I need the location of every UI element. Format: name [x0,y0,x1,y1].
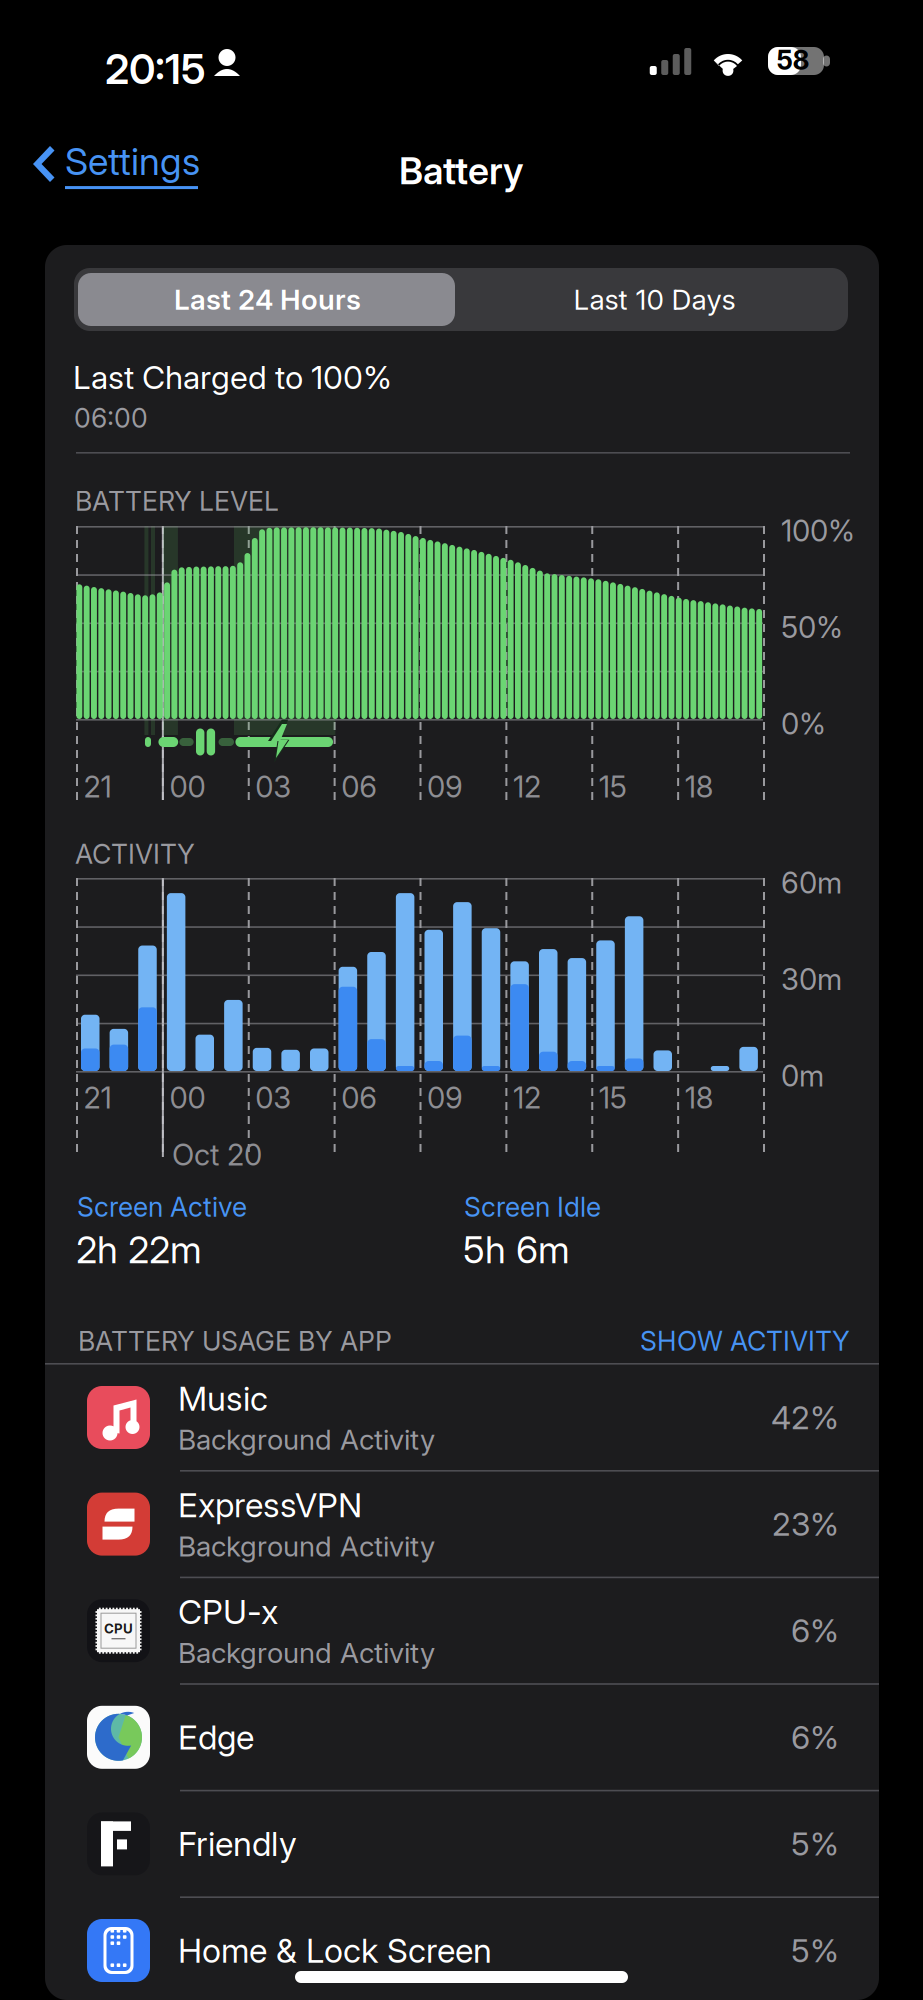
staticText: Last Charged to 100% [73,358,392,397]
staticText: 09 [427,769,463,804]
staticText: SHOW ACTIVITY [640,1325,850,1357]
staticText: ACTIVITY [75,838,195,870]
staticText: 100% [781,513,855,548]
staticText: 2h 22m [76,1227,202,1272]
staticText: Screen Idle [464,1191,601,1223]
staticText: 18 [685,1080,714,1115]
button[interactable]: Last 10 Days [461,268,848,331]
staticText: Friendly [178,1824,297,1864]
staticText: 60m [781,865,842,900]
button[interactable]: ExpressVPN [45,1472,879,1577]
staticText: 06 [341,1080,377,1115]
staticText: BATTERY LEVEL [75,485,279,517]
staticText: 06:00 [74,402,148,434]
staticText: Screen Active [77,1191,247,1223]
staticText: 5% [791,1824,839,1863]
button[interactable]: SHOW ACTIVITY [640,1325,850,1357]
staticText: Last 24 Hours [174,283,361,316]
staticText: 5% [791,1931,839,1970]
staticText: ExpressVPN [178,1485,362,1525]
button[interactable]: Last 24 Hours [74,268,461,331]
staticText: 06 [341,769,377,804]
staticText: 5h 6m [463,1227,570,1272]
staticText: Oct 20 [172,1137,262,1172]
staticText: 03 [255,1080,291,1115]
staticText: CPU [104,1621,133,1637]
staticText: 0m [781,1058,824,1093]
button[interactable]: Edge [45,1685,879,1790]
staticText: 00 [169,1080,205,1115]
staticText: Settings [65,139,200,184]
staticText: Background Activity [178,1529,435,1563]
staticText: Background Activity [178,1636,435,1670]
staticText: 0% [781,706,826,741]
button[interactable]: Settings [22,128,208,200]
staticText: Music [178,1378,268,1419]
staticText: 15 [599,769,627,804]
staticText: 20:15 [105,44,206,94]
staticText: Background Activity [178,1423,435,1457]
staticText: Home & Lock Screen [178,1930,492,1971]
staticText: 03 [255,769,291,804]
button[interactable]: Home & Lock Screen [45,1898,879,2000]
button[interactable]: Friendly [45,1791,879,1896]
staticText: 30m [781,961,842,997]
staticText: 12 [513,769,541,804]
staticText: 18 [685,769,714,804]
button[interactable]: CPU [45,1578,879,1683]
staticText: 21 [84,1080,112,1115]
staticText: 6% [791,1611,839,1650]
staticText: 21 [84,769,112,804]
staticText: CPU-x [178,1592,278,1632]
staticText: Last 10 Days [573,283,735,316]
staticText: 58 [776,44,809,76]
staticText: 12 [513,1080,541,1115]
staticText: BATTERY USAGE BY APP [78,1325,392,1357]
staticText: 09 [427,1080,463,1115]
staticText: 42% [771,1398,839,1437]
staticText: 00 [169,769,205,804]
staticText: Edge [178,1717,254,1757]
staticText: 6% [791,1718,839,1757]
staticText: Battery [399,148,524,193]
staticText: 50% [781,609,843,645]
button[interactable]: Music [45,1365,879,1470]
staticText: 15 [599,1080,627,1115]
staticText: 23% [772,1505,839,1543]
